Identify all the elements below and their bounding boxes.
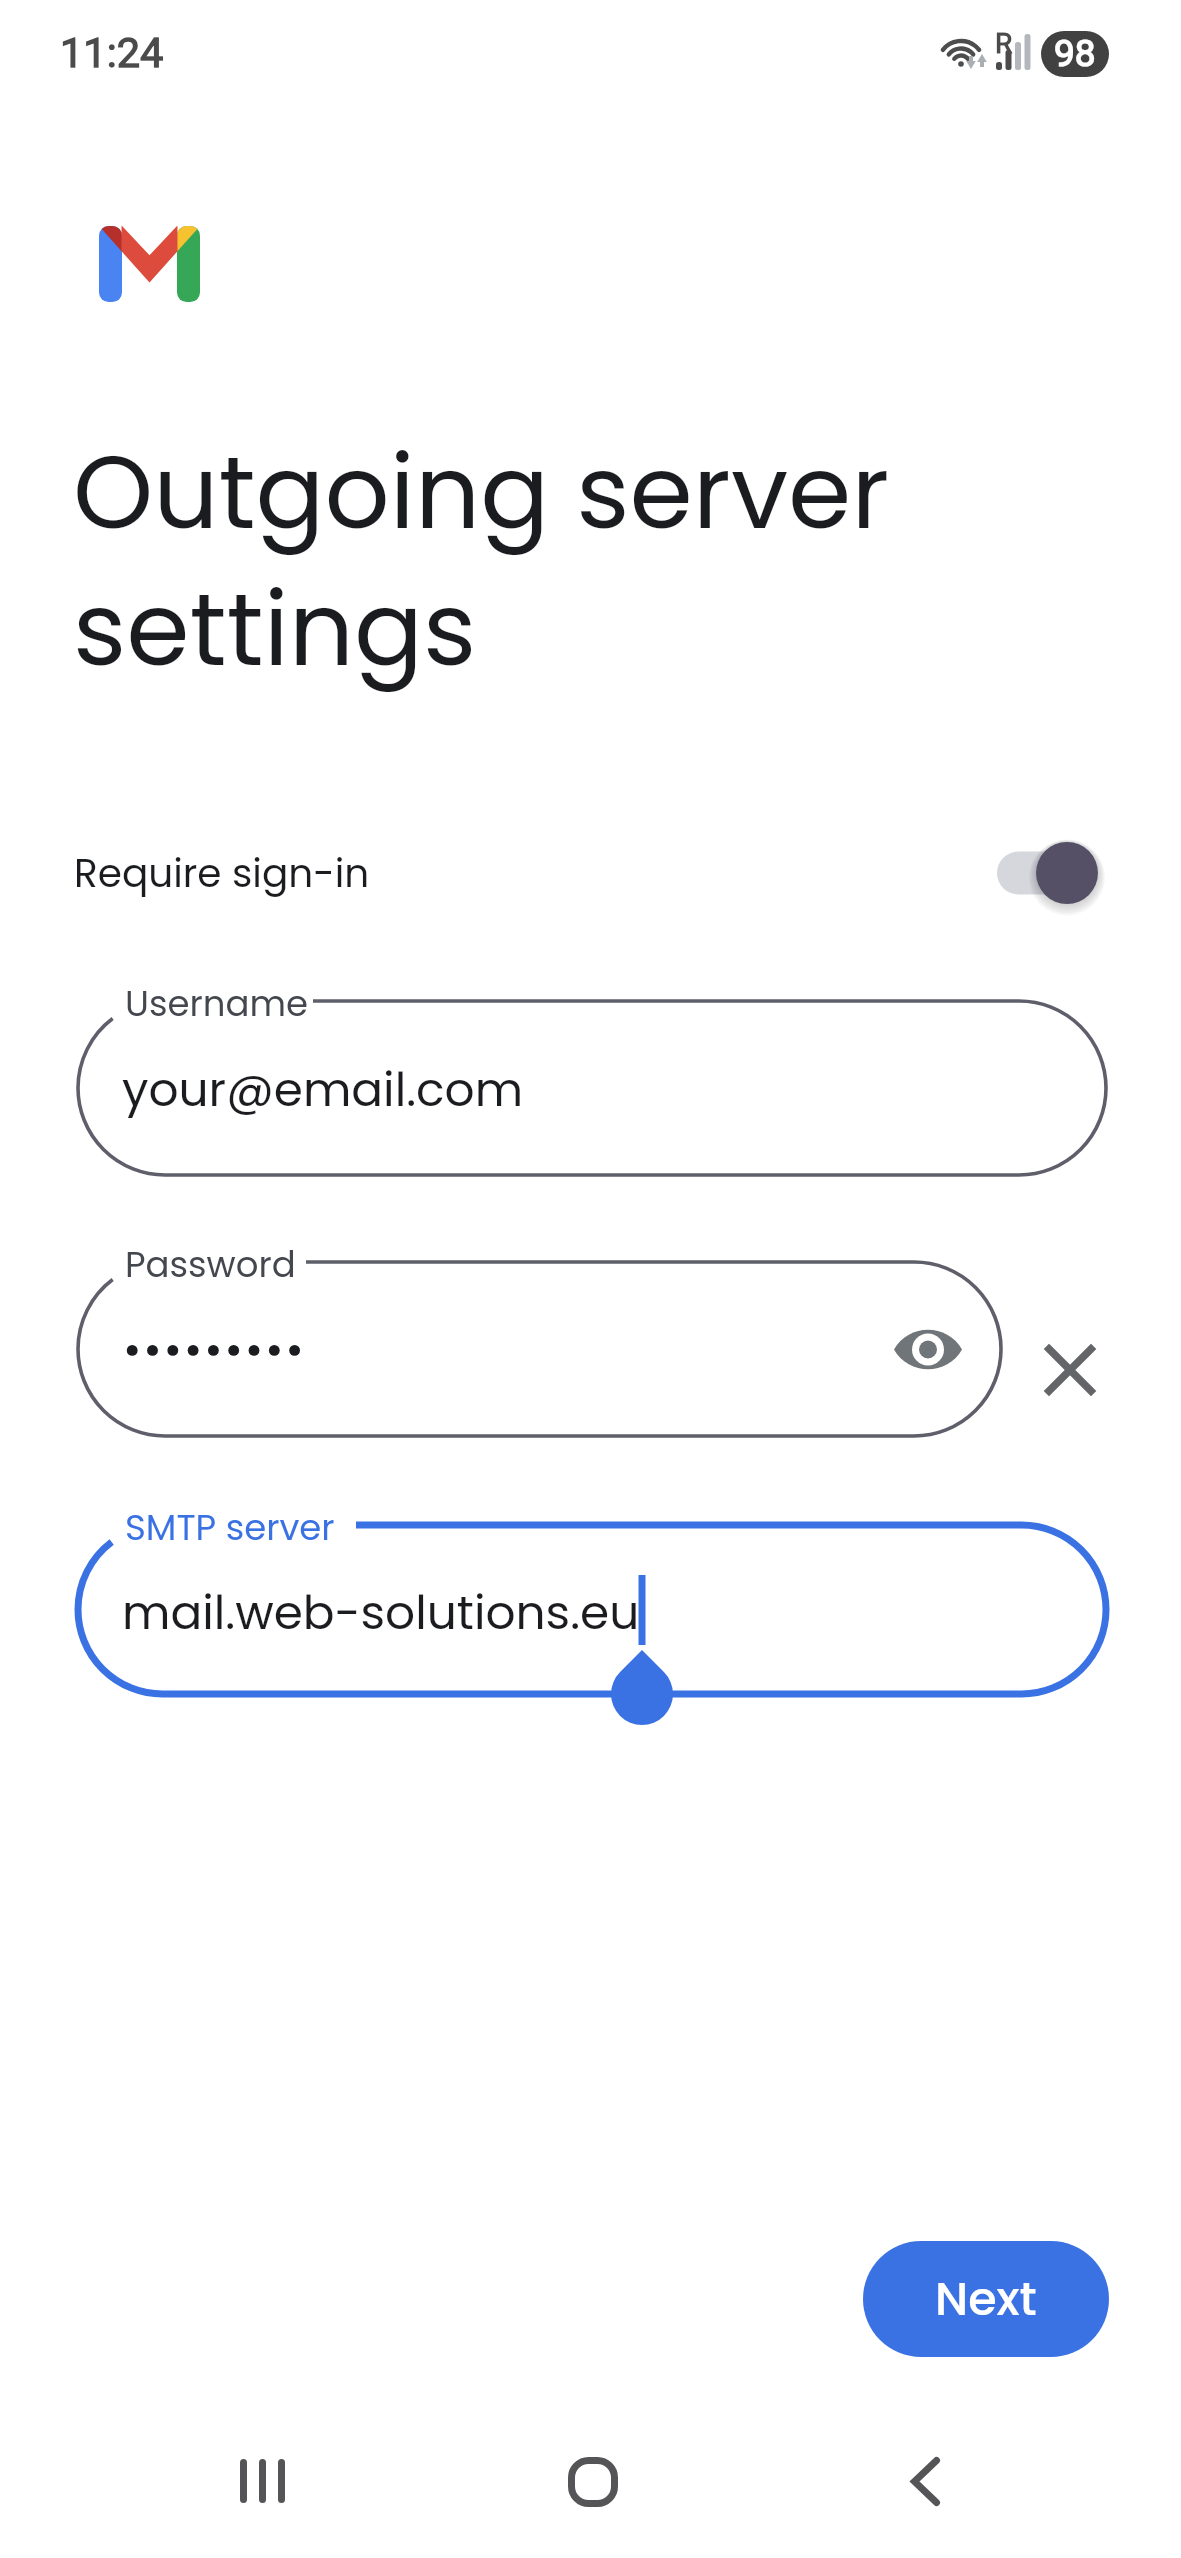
button[interactable]: Back bbox=[843, 2417, 1007, 2545]
staticText: mail.web-solutions.eu bbox=[122, 1580, 640, 1646]
button[interactable]: SMTP server bbox=[78, 1497, 1106, 1747]
button[interactable]: Require sign-in bbox=[0, 808, 1181, 938]
button[interactable] bbox=[78, 1234, 1001, 1464]
button[interactable] bbox=[78, 973, 1106, 1203]
staticText: Username bbox=[125, 979, 309, 1029]
button[interactable]: Recent apps bbox=[180, 2417, 344, 2545]
staticText: Require sign-in bbox=[74, 846, 370, 901]
button[interactable]: Home bbox=[511, 2418, 675, 2546]
staticText: Outgoing server settings bbox=[73, 421, 890, 701]
staticText: 98 bbox=[1054, 32, 1096, 75]
staticText: Next bbox=[935, 2267, 1037, 2331]
staticText: R bbox=[995, 27, 1013, 60]
button[interactable]: Next bbox=[863, 2241, 1109, 2357]
staticText: 11:24 bbox=[60, 28, 164, 77]
staticText: your@email.com bbox=[122, 1057, 524, 1123]
button[interactable]: Clear password bbox=[1022, 1322, 1118, 1418]
staticText: SMTP server bbox=[125, 1503, 335, 1553]
button[interactable]: Show password bbox=[880, 1301, 976, 1397]
staticText: Password bbox=[125, 1240, 296, 1290]
